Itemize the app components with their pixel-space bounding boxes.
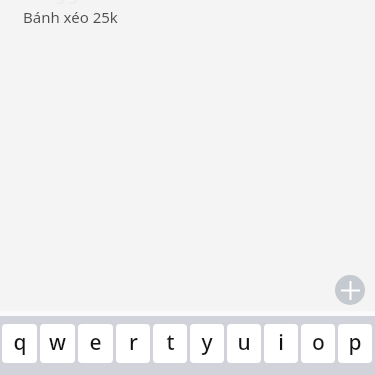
- button[interactable]: w: [40, 324, 75, 363]
- button[interactable]: y: [190, 324, 224, 363]
- staticText: w: [49, 328, 66, 357]
- staticText: i: [278, 328, 284, 357]
- staticText: r: [129, 328, 138, 357]
- staticText: e: [89, 328, 102, 357]
- button[interactable]: u: [227, 324, 261, 363]
- staticText: o: [312, 328, 325, 357]
- staticText: u: [237, 328, 251, 357]
- staticText: Bánh xéo 25k: [23, 7, 118, 27]
- button[interactable]: o: [301, 324, 335, 363]
- staticText: t: [166, 328, 175, 357]
- button[interactable]: e: [78, 324, 113, 363]
- button[interactable]: r: [116, 324, 150, 363]
- button[interactable]: Add note: [335, 275, 365, 305]
- button[interactable]: i: [264, 324, 298, 363]
- button[interactable]: p: [338, 324, 372, 363]
- staticText: q: [13, 328, 27, 357]
- staticText: p: [348, 328, 362, 357]
- button[interactable]: Bánh xéo 25k: [0, 3, 375, 31]
- button[interactable]: t: [153, 324, 187, 363]
- staticText: y: [201, 328, 213, 357]
- button[interactable]: q: [2, 324, 37, 363]
